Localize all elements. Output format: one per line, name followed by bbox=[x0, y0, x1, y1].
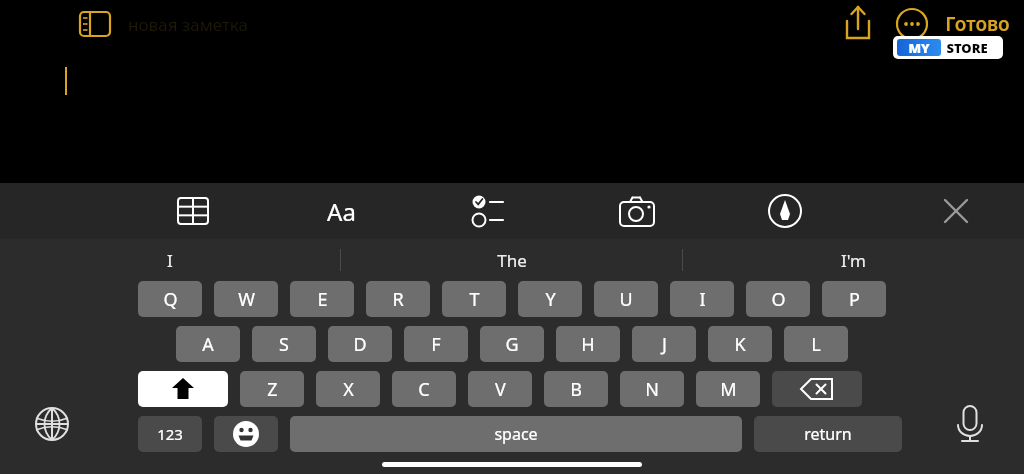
staticText: The bbox=[497, 249, 527, 272]
button[interactable]: S bbox=[252, 326, 316, 362]
staticText: F bbox=[431, 332, 441, 357]
staticText: R bbox=[392, 287, 404, 312]
staticText: A bbox=[202, 332, 214, 357]
button[interactable]: C bbox=[392, 371, 456, 407]
staticText: K bbox=[734, 332, 746, 357]
button[interactable]: E bbox=[290, 281, 354, 317]
button[interactable]: V bbox=[468, 371, 532, 407]
staticText: Z bbox=[267, 377, 278, 402]
staticText: I bbox=[699, 287, 706, 312]
button[interactable]: Change keyboard bbox=[24, 396, 80, 452]
button[interactable]: Emoji bbox=[214, 416, 278, 452]
staticText: J bbox=[662, 332, 667, 357]
button[interactable]: B bbox=[544, 371, 608, 407]
staticText: B bbox=[570, 377, 582, 402]
button[interactable]: U bbox=[594, 281, 658, 317]
button[interactable]: Table bbox=[163, 183, 223, 239]
button[interactable]: Aa bbox=[311, 183, 371, 239]
button[interactable]: return bbox=[754, 416, 902, 452]
button[interactable]: space bbox=[290, 416, 742, 452]
button[interactable]: R bbox=[366, 281, 430, 317]
button[interactable]: Checklist bbox=[459, 183, 519, 239]
button[interactable]: Q bbox=[138, 281, 202, 317]
staticText: I'm bbox=[841, 249, 866, 272]
button[interactable]: 123 bbox=[138, 416, 202, 452]
staticText: Aa bbox=[327, 195, 356, 228]
staticText: S bbox=[279, 332, 289, 357]
button[interactable]: G bbox=[480, 326, 544, 362]
button[interactable]: N bbox=[620, 371, 684, 407]
button[interactable]: Z bbox=[240, 371, 304, 407]
button[interactable]: O bbox=[746, 281, 810, 317]
button[interactable]: W bbox=[214, 281, 278, 317]
staticText: O bbox=[771, 287, 786, 312]
staticText: 123 bbox=[157, 424, 183, 444]
staticText: V bbox=[495, 377, 506, 402]
staticText: return bbox=[804, 423, 852, 445]
button[interactable]: Готово bbox=[945, 11, 1010, 37]
staticText: U bbox=[619, 287, 633, 312]
button[interactable]: A bbox=[176, 326, 240, 362]
button[interactable]: D bbox=[328, 326, 392, 362]
button[interactable]: P bbox=[822, 281, 886, 317]
button[interactable]: Markup bbox=[755, 183, 815, 239]
button[interactable]: T bbox=[442, 281, 506, 317]
button[interactable]: I bbox=[670, 281, 734, 317]
staticText: M bbox=[720, 377, 737, 402]
button[interactable]: M bbox=[696, 371, 760, 407]
button[interactable]: Sidebar bbox=[72, 4, 118, 44]
button[interactable]: K bbox=[708, 326, 772, 362]
staticText: P bbox=[849, 287, 860, 312]
button[interactable]: Shift bbox=[138, 371, 228, 407]
button[interactable]: Backspace bbox=[772, 371, 862, 407]
staticText: D bbox=[353, 332, 367, 357]
staticText: Готово bbox=[945, 11, 1010, 37]
staticText: Q bbox=[163, 287, 178, 312]
button[interactable]: L bbox=[784, 326, 848, 362]
staticText: space bbox=[494, 423, 538, 445]
staticText: новая заметка bbox=[128, 13, 248, 36]
staticText: T bbox=[469, 287, 480, 312]
button[interactable]: I bbox=[0, 239, 340, 281]
button[interactable]: Dictation bbox=[942, 396, 998, 452]
staticText: X bbox=[343, 377, 354, 402]
staticText: H bbox=[581, 332, 595, 357]
staticText: STORE bbox=[946, 39, 988, 57]
staticText: I bbox=[167, 249, 173, 272]
button[interactable]: Close bbox=[926, 183, 986, 239]
button[interactable]: Y bbox=[518, 281, 582, 317]
button[interactable]: Share bbox=[831, 1, 885, 47]
staticText: C bbox=[418, 377, 430, 402]
button[interactable]: H bbox=[556, 326, 620, 362]
button[interactable]: F bbox=[404, 326, 468, 362]
button[interactable]: X bbox=[316, 371, 380, 407]
staticText: Y bbox=[545, 287, 556, 312]
button[interactable]: Camera bbox=[607, 183, 667, 239]
button[interactable]: I'm bbox=[683, 239, 1024, 281]
button[interactable]: The bbox=[341, 239, 682, 281]
staticText: E bbox=[317, 287, 328, 312]
staticText: N bbox=[645, 377, 659, 402]
button[interactable]: More options bbox=[885, 1, 939, 47]
button[interactable]: J bbox=[632, 326, 696, 362]
staticText: G bbox=[505, 332, 519, 357]
staticText: W bbox=[238, 287, 255, 312]
staticText: MY bbox=[908, 39, 930, 56]
staticText: L bbox=[811, 332, 821, 357]
